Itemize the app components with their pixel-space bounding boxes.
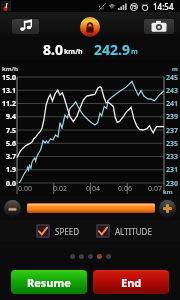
staticText: 243 xyxy=(166,86,179,96)
staticText: 7.5 xyxy=(0,126,16,136)
button[interactable]: SPEED xyxy=(36,224,79,238)
staticText: ALTITUDE xyxy=(115,226,152,237)
staticText: km/h xyxy=(64,47,83,57)
staticText: 242.9 xyxy=(94,40,130,59)
button[interactable]: Camera xyxy=(144,19,174,34)
staticText: 231 xyxy=(166,165,179,175)
staticText: 13.1 xyxy=(0,86,16,96)
button[interactable]: Zoom slider xyxy=(27,203,155,213)
staticText: 239 xyxy=(166,112,179,122)
button[interactable]: Zoom out xyxy=(4,200,21,217)
staticText: 0.06 xyxy=(118,184,132,194)
staticText: 237 xyxy=(166,126,179,136)
staticText: 8.0 xyxy=(43,40,63,59)
button[interactable]: Zoom in xyxy=(159,200,176,217)
staticText: 3.7 xyxy=(0,152,16,162)
staticText: m xyxy=(131,47,138,57)
button[interactable]: Lock xyxy=(80,17,100,37)
staticText: SPEED xyxy=(55,226,79,237)
staticText: 230 xyxy=(166,179,179,189)
button[interactable]: Music xyxy=(12,19,39,34)
staticText: 14:54 xyxy=(153,1,174,12)
staticText: 0.00 xyxy=(18,184,32,194)
staticText: 15.0 xyxy=(0,73,16,83)
staticText: 0.0 xyxy=(0,179,16,189)
staticText: 5.6 xyxy=(0,139,16,149)
staticText: 241 xyxy=(166,99,179,109)
staticText: m xyxy=(172,65,178,73)
staticText: End xyxy=(121,275,142,290)
button[interactable]: ALTITUDE xyxy=(96,224,152,238)
staticText: 233 xyxy=(166,152,179,162)
staticText: km/h xyxy=(2,65,18,73)
staticText: 9.4 xyxy=(0,112,16,122)
staticText: 75 xyxy=(131,4,137,11)
staticText: 0.04 xyxy=(86,184,100,194)
staticText: 235 xyxy=(166,139,179,149)
button[interactable]: End xyxy=(93,270,169,294)
staticText: 245 xyxy=(166,73,179,83)
staticText: 0.07 xyxy=(148,184,162,194)
button[interactable]: Resume xyxy=(11,270,87,294)
staticText: Resume xyxy=(27,275,71,290)
staticText: 11.2 xyxy=(0,99,16,109)
staticText: 1.9 xyxy=(0,165,16,175)
staticText: km xyxy=(163,188,173,196)
staticText: 0.02 xyxy=(53,184,67,194)
